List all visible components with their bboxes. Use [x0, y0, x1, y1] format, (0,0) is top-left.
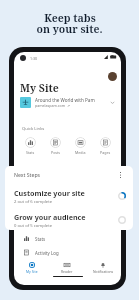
- staticText: Activity Log: [35, 250, 59, 256]
- button[interactable]: My Site: [14, 262, 49, 274]
- button[interactable]: Media: [68, 137, 93, 155]
- button[interactable]: Stats: [17, 137, 43, 155]
- button[interactable]: Pages: [93, 137, 118, 155]
- staticText: Stats: [26, 150, 35, 155]
- button[interactable]: Posts: [43, 137, 68, 155]
- button[interactable]: Notifications: [85, 262, 121, 274]
- staticText: Quick Links: [22, 126, 45, 132]
- staticText: Posts: [51, 150, 61, 155]
- staticText: Stats: [35, 236, 46, 242]
- button[interactable]: Grow your audience: [5, 208, 133, 230]
- staticText: 0 out of 5 complete: [14, 223, 53, 229]
- staticText: Grow your audience: [14, 212, 86, 222]
- staticText: Pages: [100, 150, 111, 155]
- button[interactable]: Around the World with Pam: [14, 95, 121, 109]
- staticText: Next Steps: [14, 171, 41, 178]
- button[interactable]: Customize your site: [5, 184, 133, 207]
- button[interactable]: More options: [116, 170, 125, 179]
- button[interactable]: Stats: [14, 232, 121, 245]
- button[interactable]: Account: [108, 72, 117, 81]
- staticText: Media: [75, 150, 86, 155]
- button[interactable]: Reader: [49, 262, 85, 274]
- staticText: Notifications: [93, 269, 114, 274]
- staticText: 1:30: [30, 56, 38, 61]
- staticText: 2 out of 6 complete: [14, 199, 53, 205]
- staticText: Reader: [61, 269, 73, 274]
- staticText: on your site.: [36, 22, 103, 36]
- staticText: My Site: [20, 81, 59, 95]
- button[interactable]: Activity Log: [14, 246, 121, 259]
- staticText: Keep tabs: [44, 11, 96, 25]
- staticText: Customize your site: [14, 188, 85, 198]
- staticText: My Site: [26, 269, 38, 274]
- staticText: pamelaspam.com ↗: [35, 103, 70, 108]
- staticText: Around the World with Pam: [35, 97, 95, 103]
